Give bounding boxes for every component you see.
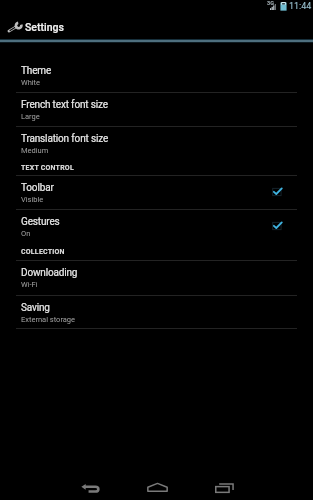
staticText: French text font size xyxy=(21,99,108,111)
staticText: Gestures xyxy=(21,216,60,228)
staticText: COLLECTION xyxy=(21,248,65,256)
staticText: On xyxy=(21,229,31,238)
button[interactable]: Gestures xyxy=(0,209,313,243)
staticText: 3G xyxy=(267,0,274,6)
button[interactable]: Recent apps xyxy=(204,470,244,498)
button[interactable]: Toolbar xyxy=(0,175,313,209)
staticText: External storage xyxy=(21,315,76,324)
staticText: Large xyxy=(21,112,40,121)
staticText: Toolbar xyxy=(21,182,54,194)
button[interactable]: Saving xyxy=(0,295,313,329)
staticText: 11:44 xyxy=(289,1,312,12)
staticText: Downloading xyxy=(21,267,78,279)
staticText: TEXT CONTROL xyxy=(21,164,74,172)
staticText: White xyxy=(21,78,41,87)
button[interactable]: Theme xyxy=(0,58,313,92)
button[interactable]: Translation font size xyxy=(0,126,313,160)
staticText: Wi-Fi xyxy=(21,280,38,289)
staticText: Medium xyxy=(21,146,49,155)
staticText: Visible xyxy=(21,195,44,204)
staticText: Translation font size xyxy=(21,133,109,145)
staticText: Settings xyxy=(25,21,64,33)
staticText: Saving xyxy=(21,302,50,314)
button[interactable]: Back xyxy=(70,470,110,498)
button[interactable]: Home xyxy=(136,470,176,498)
button[interactable]: Downloading xyxy=(0,260,313,294)
button[interactable]: French text font size xyxy=(0,92,313,126)
staticText: Theme xyxy=(21,65,52,77)
